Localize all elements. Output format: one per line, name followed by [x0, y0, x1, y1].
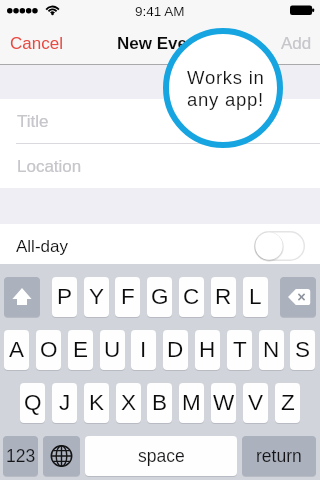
button[interactable]: B: [147, 383, 172, 423]
button[interactable]: space: [85, 436, 237, 476]
button[interactable]: Shift: [4, 277, 40, 317]
button[interactable]: All-day toggle: [254, 231, 305, 261]
button[interactable]: R: [211, 277, 236, 317]
button[interactable]: K: [84, 383, 109, 423]
button[interactable]: X: [116, 383, 141, 423]
staticText: O: [40, 337, 58, 362]
staticText: P: [57, 284, 73, 309]
staticText: L: [249, 284, 262, 309]
staticText: A: [9, 337, 25, 362]
button[interactable]: Q: [20, 383, 45, 423]
button[interactable]: D: [163, 330, 188, 370]
staticText: Works in: [187, 67, 265, 88]
staticText: All-day: [16, 237, 68, 256]
button[interactable]: Z: [275, 383, 300, 423]
button[interactable]: V: [243, 383, 268, 423]
staticText: G: [151, 284, 169, 309]
staticText: I: [140, 337, 147, 362]
button[interactable]: Switch keyboard: [43, 436, 80, 476]
button[interactable]: I: [131, 330, 156, 370]
button[interactable]: Location: [0, 144, 320, 188]
staticText: Q: [24, 390, 42, 415]
staticText: J: [59, 390, 71, 415]
staticText: E: [73, 337, 89, 362]
staticText: Add: [281, 34, 312, 53]
button[interactable]: Cancel: [0, 26, 75, 61]
staticText: H: [199, 337, 216, 362]
button[interactable]: S: [290, 330, 315, 370]
staticText: return: [256, 446, 302, 466]
staticText: U: [104, 337, 121, 362]
staticText: M: [182, 390, 201, 415]
button[interactable]: U: [100, 330, 125, 370]
button[interactable]: E: [68, 330, 93, 370]
staticText: R: [215, 284, 232, 309]
staticText: C: [183, 284, 200, 309]
button[interactable]: A: [4, 330, 29, 370]
button[interactable]: Title: [0, 99, 320, 143]
button[interactable]: Y: [84, 277, 109, 317]
staticText: B: [152, 390, 168, 415]
staticText: X: [121, 390, 137, 415]
staticText: Z: [281, 390, 295, 415]
staticText: S: [295, 337, 311, 362]
staticText: Location: [17, 157, 82, 176]
staticText: any app!: [187, 89, 264, 110]
staticText: 123: [6, 446, 36, 466]
button[interactable]: M: [179, 383, 204, 423]
staticText: Y: [89, 284, 105, 309]
button[interactable]: Backspace: [280, 277, 316, 317]
button[interactable]: F: [115, 277, 140, 317]
staticText: F: [121, 284, 135, 309]
button[interactable]: T: [227, 330, 252, 370]
button[interactable]: J: [52, 383, 77, 423]
button[interactable]: return: [242, 436, 316, 476]
button[interactable]: L: [243, 277, 268, 317]
staticText: D: [167, 337, 184, 362]
button[interactable]: P: [52, 277, 77, 317]
button[interactable]: 123: [3, 436, 38, 476]
button[interactable]: N: [259, 330, 284, 370]
staticText: space: [138, 446, 185, 466]
staticText: New Event: [117, 34, 203, 53]
button[interactable]: W: [211, 383, 236, 423]
staticText: N: [263, 337, 280, 362]
staticText: 9:41 AM: [135, 4, 185, 19]
staticText: V: [248, 390, 264, 415]
button[interactable]: O: [36, 330, 61, 370]
staticText: T: [233, 337, 247, 362]
button[interactable]: H: [195, 330, 220, 370]
button[interactable]: G: [147, 277, 172, 317]
staticText: Title: [17, 112, 49, 131]
staticText: K: [89, 390, 105, 415]
staticText: Cancel: [10, 34, 63, 53]
staticText: W: [213, 390, 235, 415]
button[interactable]: Add: [269, 26, 320, 61]
button[interactable]: C: [179, 277, 204, 317]
button[interactable]: All-day: [0, 224, 320, 268]
